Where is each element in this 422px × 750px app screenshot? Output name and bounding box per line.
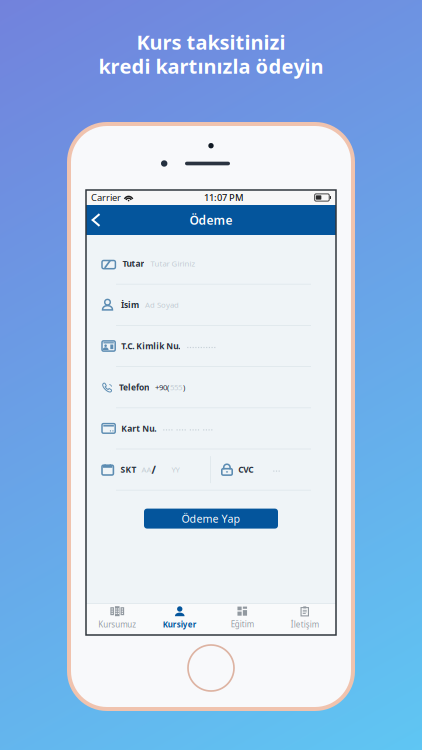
staticText: Tutar Giriniz	[150, 258, 195, 269]
staticText: YY	[171, 464, 179, 475]
button[interactable]: Ödeme Yap	[144, 509, 278, 529]
staticText: CVC	[238, 464, 253, 475]
staticText: Carrier	[91, 191, 121, 204]
staticText: 11:07 PM	[204, 191, 244, 204]
button[interactable]: Kursumuz	[86, 604, 148, 635]
staticText: Kursiyer	[163, 619, 197, 630]
staticText: Kart Nu.	[121, 423, 156, 434]
staticText: T.C. Kimlik Nu.	[121, 340, 180, 352]
staticText: /	[151, 462, 155, 477]
staticText: Tutar	[122, 258, 144, 269]
staticText: Ödeme Yap	[181, 511, 240, 526]
button[interactable]: Eğitim	[211, 604, 273, 635]
staticText: Kursumuz	[98, 619, 136, 630]
staticText: )	[183, 382, 185, 392]
staticText: İletişim	[291, 619, 319, 630]
staticText: Ödeme	[189, 212, 232, 228]
staticText: SKT	[120, 464, 136, 475]
button[interactable]: İletişim	[273, 604, 336, 635]
staticText: 555	[170, 382, 182, 392]
staticText: +90(	[155, 382, 169, 392]
staticText: Telefon	[119, 381, 149, 393]
staticText: kredi kartınızla ödeyin	[98, 53, 323, 79]
staticText: Kurs taksitinizi	[136, 29, 285, 55]
staticText: AA	[141, 464, 151, 475]
staticText: Eğitim	[231, 619, 254, 629]
button[interactable]: Kursiyer	[148, 604, 211, 635]
staticText: İsim	[121, 299, 139, 310]
button[interactable]: Back	[86, 205, 111, 235]
staticText: Ad Soyad	[145, 299, 179, 310]
